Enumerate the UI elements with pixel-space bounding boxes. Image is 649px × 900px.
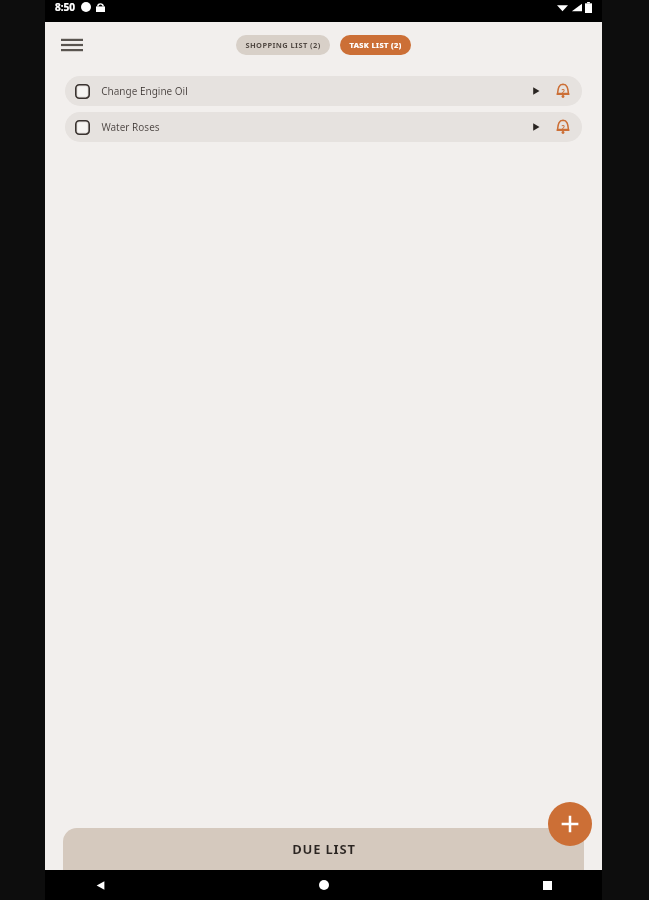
button[interactable]: Toggle Water Roses xyxy=(65,112,582,142)
staticText: 2 xyxy=(561,123,565,132)
staticText: 2 xyxy=(561,87,565,96)
staticText: 8:50 xyxy=(55,0,75,14)
button[interactable]: Expand xyxy=(526,81,546,101)
staticText: DUE LIST xyxy=(292,840,356,858)
button[interactable]: Menu xyxy=(55,28,89,62)
button[interactable]: Reminders xyxy=(552,80,574,102)
button[interactable]: Back xyxy=(85,870,115,900)
button[interactable]: Toggle Change Engine Oil xyxy=(65,76,582,106)
staticText: Change Engine Oil xyxy=(101,84,188,98)
staticText: Water Roses xyxy=(101,120,160,134)
button[interactable]: SHOPPING LIST (2) xyxy=(236,35,330,55)
button[interactable]: Expand xyxy=(526,117,546,137)
button[interactable]: Toggle Change Engine Oil xyxy=(73,82,91,100)
button[interactable]: Reminders xyxy=(552,116,574,138)
button[interactable]: DUE LIST xyxy=(63,828,584,870)
staticText: SHOPPING LIST (2) xyxy=(245,40,321,50)
button[interactable]: Toggle Water Roses xyxy=(73,118,91,136)
button[interactable]: Recents xyxy=(532,870,562,900)
button[interactable]: Add task xyxy=(548,802,592,846)
button[interactable]: TASK LIST (2) xyxy=(340,35,411,55)
button[interactable]: Home xyxy=(309,870,339,900)
staticText: TASK LIST (2) xyxy=(349,40,402,50)
